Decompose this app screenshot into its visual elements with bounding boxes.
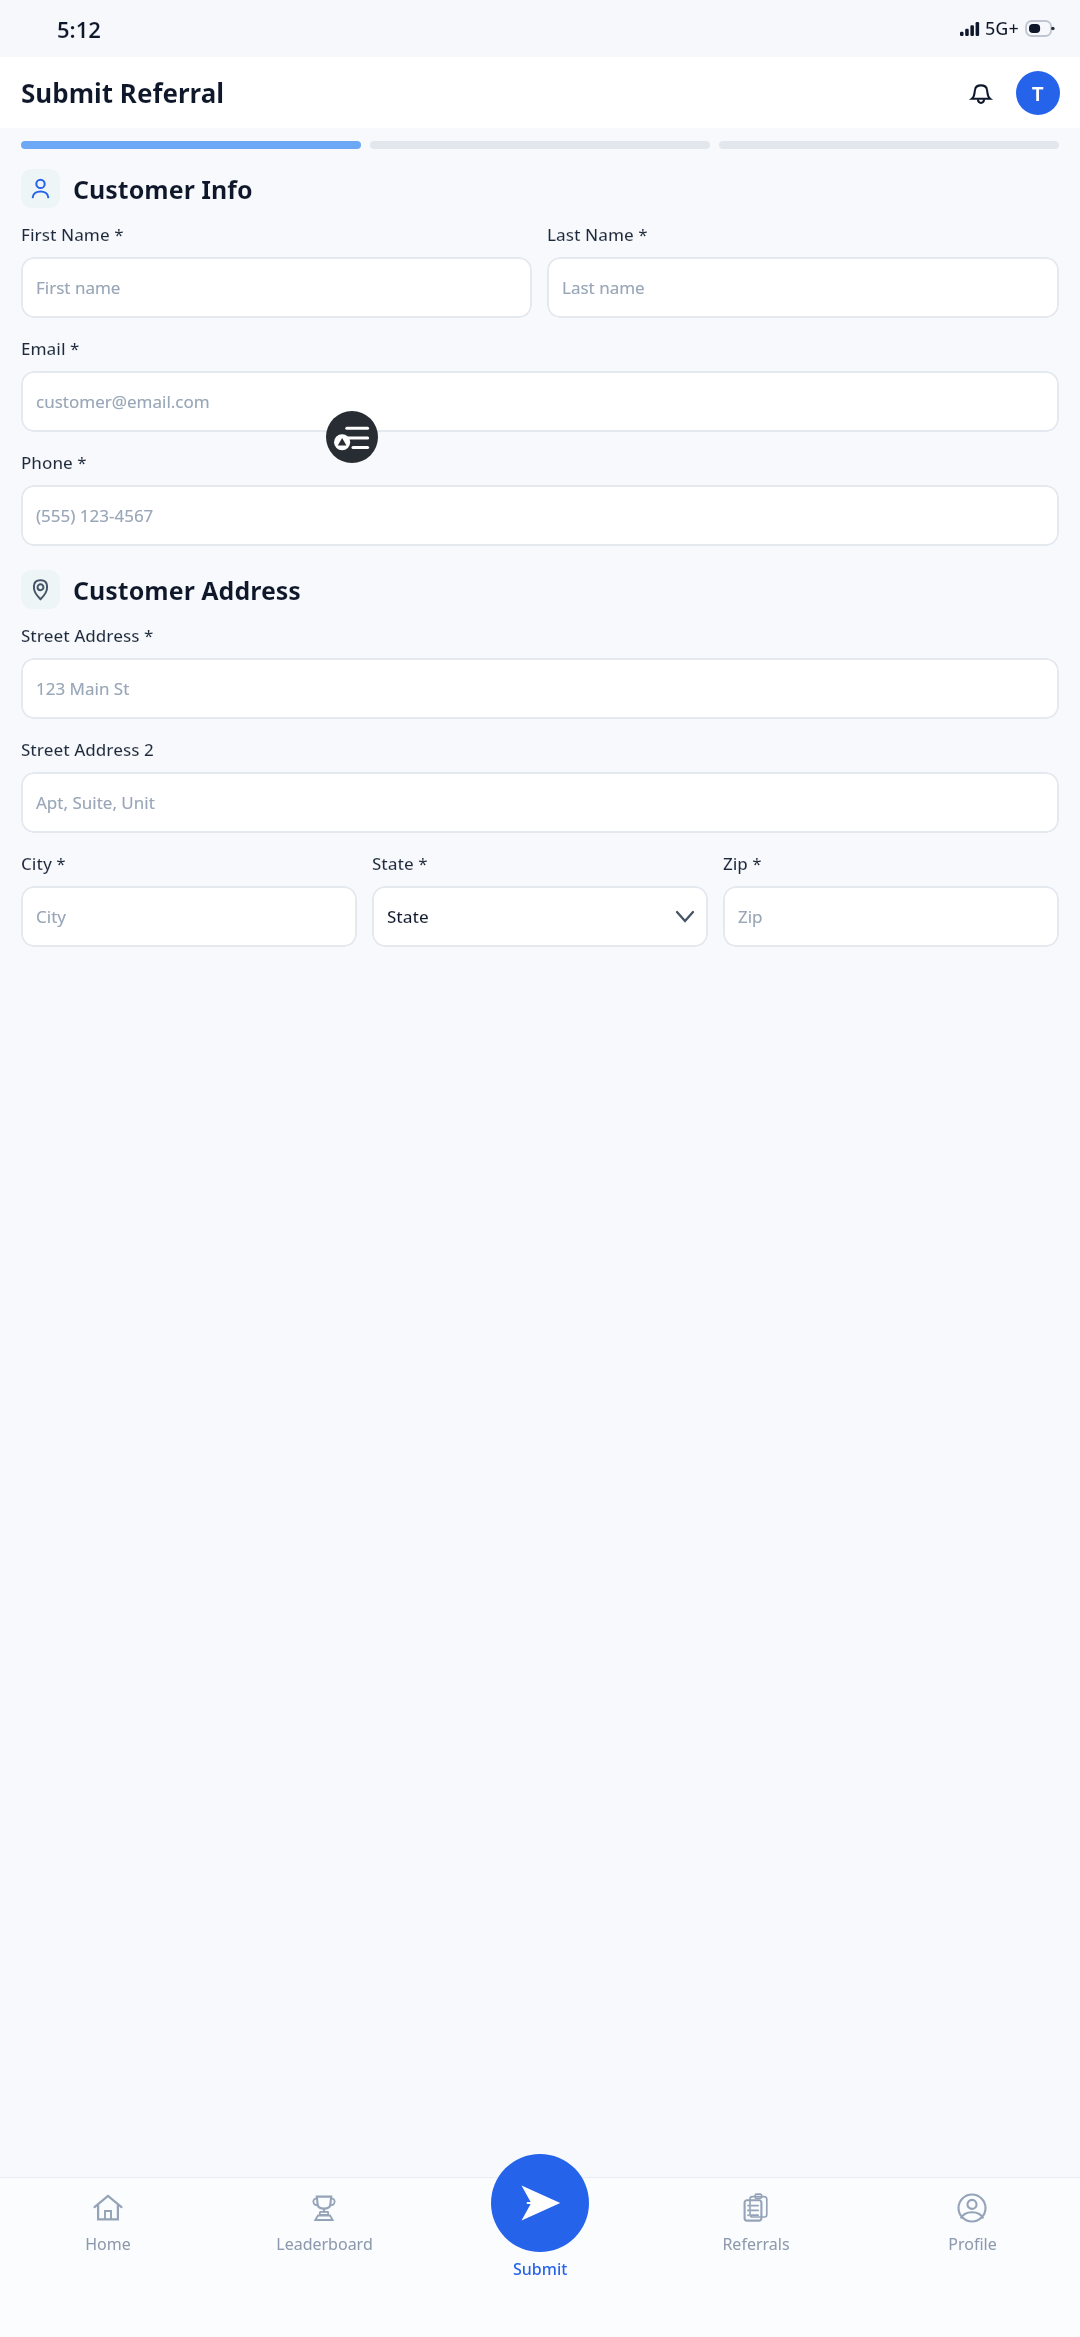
staticText: 5G+ bbox=[985, 16, 1019, 41]
staticText: Submit bbox=[513, 2258, 568, 2280]
staticText: Zip * bbox=[723, 852, 762, 875]
button[interactable]: Referrals bbox=[648, 2177, 864, 2289]
staticText: 5:12 bbox=[57, 14, 101, 44]
staticText: Submit Referral bbox=[21, 75, 225, 110]
button[interactable]: Apt, Suite, Unit bbox=[21, 772, 1059, 833]
button[interactable]: Zip bbox=[723, 886, 1059, 947]
staticText: First Name * bbox=[21, 223, 124, 246]
button[interactable]: Submit referral bbox=[491, 2154, 589, 2252]
button[interactable]: Last name bbox=[547, 257, 1059, 318]
staticText: Leaderboard bbox=[276, 2233, 373, 2255]
staticText: Customer Info bbox=[73, 172, 253, 206]
button[interactable]: City bbox=[21, 886, 357, 947]
staticText: Home bbox=[85, 2233, 131, 2255]
button[interactable]: State bbox=[372, 886, 708, 947]
button[interactable]: Account bbox=[1016, 71, 1060, 115]
staticText: Email * bbox=[21, 337, 80, 360]
button[interactable]: Quick actions bbox=[326, 411, 378, 463]
staticText: State bbox=[387, 905, 429, 928]
staticText: First name bbox=[36, 276, 121, 299]
staticText: Phone * bbox=[21, 451, 87, 474]
button[interactable]: customer@email.com bbox=[21, 371, 1059, 432]
staticText: Street Address 2 bbox=[21, 738, 154, 761]
button[interactable]: (555) 123-4567 bbox=[21, 485, 1059, 546]
button[interactable]: Notifications bbox=[960, 72, 1002, 114]
staticText: State * bbox=[372, 852, 428, 875]
button[interactable]: First name bbox=[21, 257, 532, 318]
staticText: Zip bbox=[738, 905, 763, 928]
staticText: Referrals bbox=[722, 2233, 790, 2255]
staticText: Street Address * bbox=[21, 624, 154, 647]
staticText: Customer Address bbox=[73, 573, 301, 607]
staticText: Last name bbox=[562, 276, 645, 299]
staticText: Last Name * bbox=[547, 223, 648, 246]
staticText: 123 Main St bbox=[36, 677, 130, 700]
button[interactable]: Profile bbox=[864, 2177, 1080, 2289]
staticText: (555) 123-4567 bbox=[36, 504, 154, 527]
staticText: City bbox=[36, 905, 66, 928]
button[interactable]: Home bbox=[0, 2177, 216, 2289]
staticText: customer@email.com bbox=[36, 390, 210, 413]
button[interactable]: 123 Main St bbox=[21, 658, 1059, 719]
staticText: T bbox=[1032, 80, 1044, 107]
staticText: Apt, Suite, Unit bbox=[36, 791, 155, 814]
staticText: Profile bbox=[948, 2233, 997, 2255]
button[interactable]: Leaderboard bbox=[216, 2177, 432, 2289]
staticText: City * bbox=[21, 852, 66, 875]
